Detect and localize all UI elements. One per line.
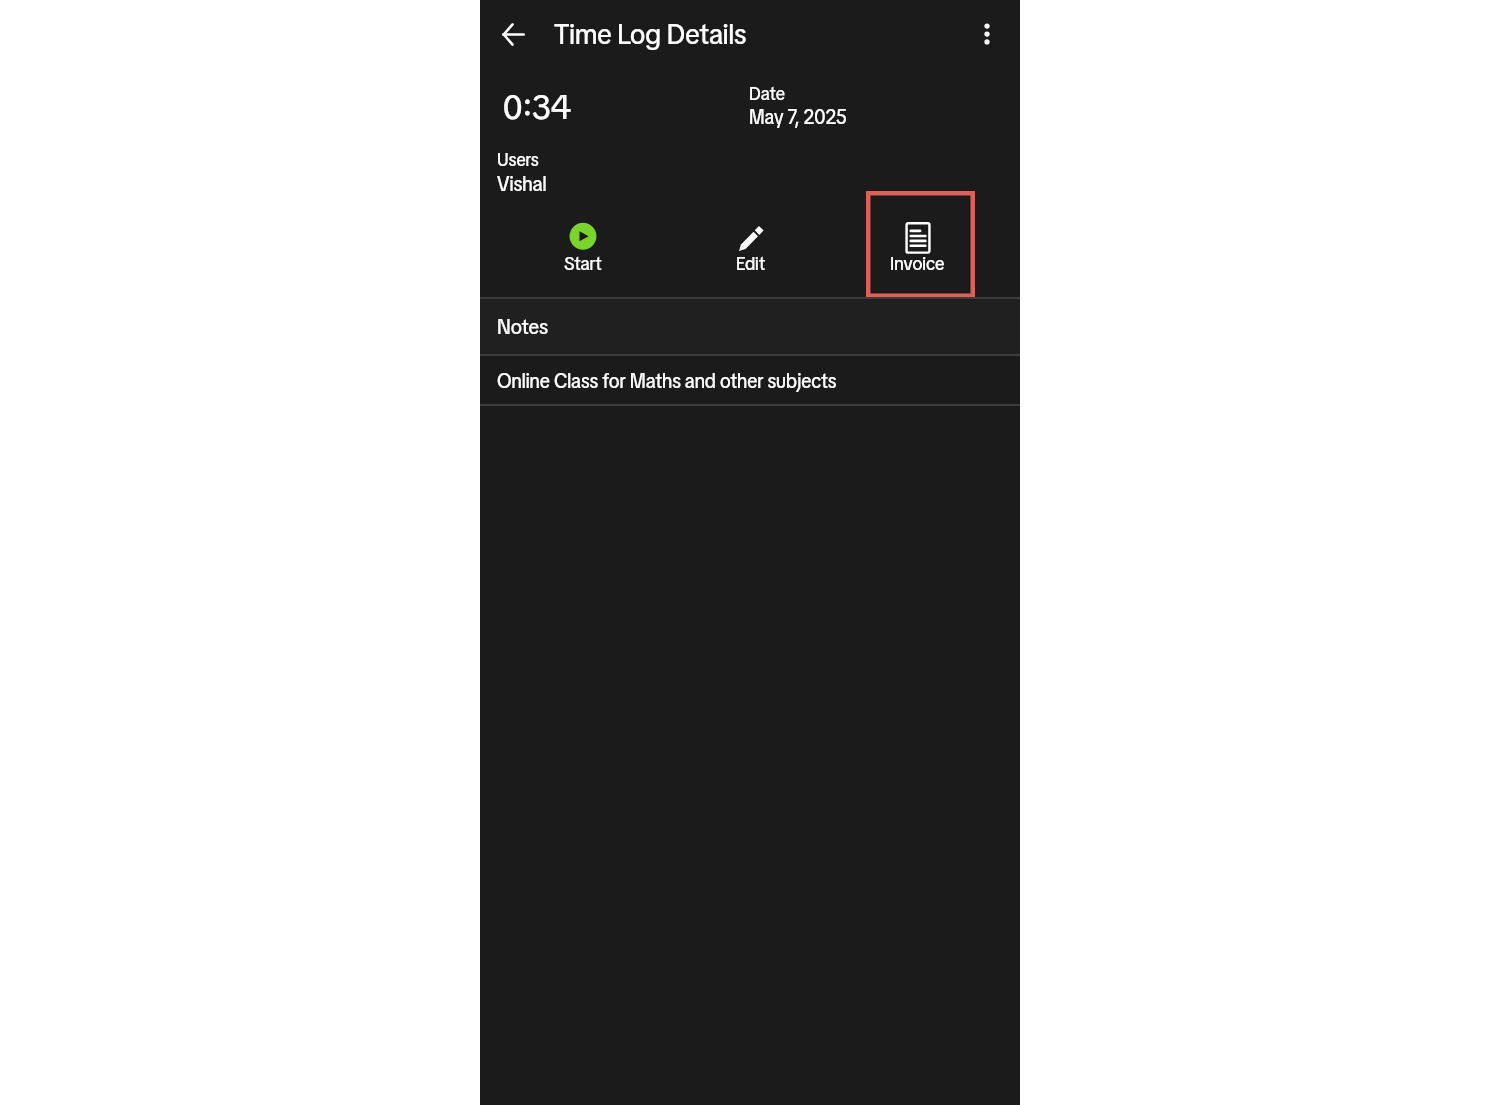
staticText: Start	[564, 251, 602, 276]
staticText: Vishal	[497, 170, 547, 197]
staticText: Users	[497, 147, 539, 171]
staticText: Invoice	[890, 251, 945, 276]
button[interactable]: Online Class for Maths and other subject…	[480, 356, 1020, 404]
button[interactable]: More options	[951, 0, 1023, 68]
staticText: Edit	[736, 251, 766, 276]
staticText: Date	[749, 81, 785, 105]
button[interactable]: Invoice	[834, 219, 1001, 287]
staticText: Online Class for Maths and other subject…	[497, 367, 837, 394]
staticText: Time Log Details	[554, 15, 747, 53]
button[interactable]: Start	[499, 219, 667, 287]
staticText: Notes	[497, 313, 548, 341]
button[interactable]: Back	[477, 0, 549, 68]
staticText: 0:34	[503, 84, 572, 129]
button[interactable]: Edit	[667, 219, 834, 287]
staticText: May 7, 2025	[749, 104, 847, 130]
